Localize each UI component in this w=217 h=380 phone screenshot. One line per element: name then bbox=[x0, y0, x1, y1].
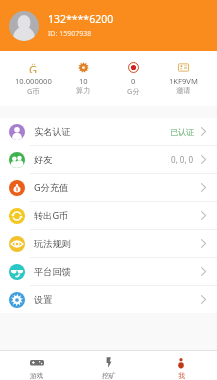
staticText: 平台回馈 bbox=[34, 266, 71, 278]
staticText: G币 bbox=[27, 86, 40, 96]
button[interactable]: 实名认证 bbox=[0, 118, 217, 145]
staticText: 挖矿 bbox=[102, 371, 116, 380]
button[interactable]: 10 bbox=[58, 51, 108, 106]
staticText: ID: 15907938 bbox=[48, 29, 92, 39]
button[interactable]: 挖矿 bbox=[73, 351, 145, 380]
button[interactable]: 1KF9VM bbox=[158, 51, 208, 106]
staticText: 1KF9VM bbox=[169, 76, 198, 86]
button[interactable]: 我 bbox=[145, 351, 217, 380]
staticText: 好友 bbox=[34, 154, 53, 166]
staticText: 转出G币 bbox=[34, 209, 69, 222]
staticText: 0 bbox=[131, 76, 136, 86]
button[interactable]: 0 bbox=[108, 51, 158, 106]
staticText: G bbox=[29, 62, 38, 73]
staticText: 实名认证 bbox=[34, 126, 71, 138]
staticText: G分 bbox=[127, 86, 140, 96]
button[interactable]: G分充值 bbox=[0, 174, 217, 201]
staticText: 10.000000 bbox=[15, 76, 52, 86]
staticText: 10 bbox=[79, 76, 88, 86]
button[interactable]: 平台回馈 bbox=[0, 258, 217, 285]
button[interactable]: 转出G币 bbox=[0, 202, 217, 229]
staticText: 玩法规则 bbox=[34, 238, 71, 250]
staticText: 132****6200 bbox=[48, 12, 114, 26]
staticText: G分充值 bbox=[34, 181, 69, 194]
staticText: 设置 bbox=[34, 294, 53, 306]
button[interactable]: 132****6200 bbox=[0, 0, 217, 51]
staticText: 邀请 bbox=[176, 86, 191, 95]
button[interactable]: 玩法规则 bbox=[0, 230, 217, 257]
button[interactable]: G bbox=[9, 51, 58, 106]
button[interactable]: 好友 bbox=[0, 146, 217, 173]
staticText: 0, 0, 0 bbox=[171, 154, 194, 165]
staticText: 我 bbox=[178, 371, 185, 380]
button[interactable]: 设置 bbox=[0, 286, 217, 313]
staticText: 算力 bbox=[76, 86, 91, 95]
button[interactable]: 游戏 bbox=[0, 351, 73, 380]
staticText: 已认证 bbox=[170, 127, 194, 137]
staticText: 游戏 bbox=[30, 371, 44, 380]
